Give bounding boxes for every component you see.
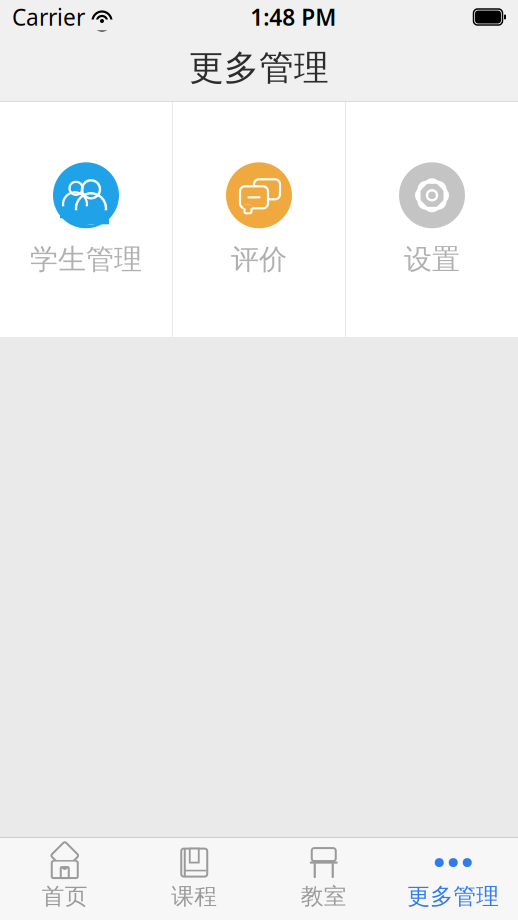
staticText: 设置 [404,242,460,277]
staticText: 更多管理 [407,883,499,910]
staticText: 教室 [301,883,347,910]
button[interactable]: 学生管理 [0,102,172,337]
button[interactable]: 教室 [259,838,388,920]
button[interactable]: 首页 [0,838,129,920]
button[interactable]: 更多管理 [388,838,518,920]
staticText: Carrier [12,2,85,32]
button[interactable]: 评价 [173,102,345,337]
staticText: 首页 [42,883,88,910]
staticText: 评价 [231,242,287,277]
staticText: 1:48 PM [250,2,336,32]
button[interactable]: 设置 [346,102,518,337]
staticText: 课程 [171,883,217,910]
button[interactable]: 课程 [129,838,259,920]
staticText: 学生管理 [30,242,142,277]
staticText: 更多管理 [189,47,329,89]
